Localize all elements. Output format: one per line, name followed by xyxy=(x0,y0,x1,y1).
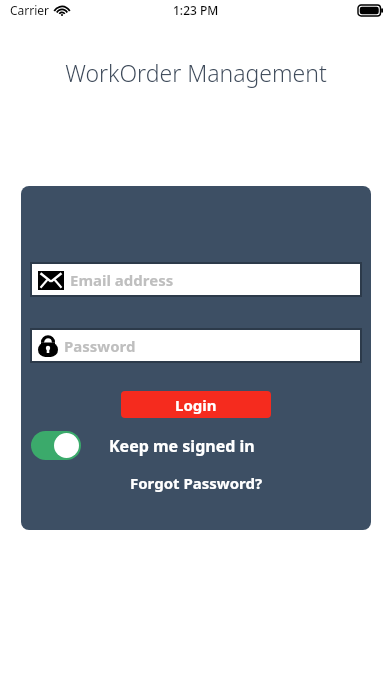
button[interactable]: Forgot Password? xyxy=(124,471,269,495)
staticText: WorkOrder Management xyxy=(65,57,327,88)
staticText: 1:23 PM xyxy=(173,2,219,18)
button[interactable]: Password xyxy=(30,328,362,363)
other: Password xyxy=(38,335,58,357)
staticText: Carrier xyxy=(10,2,50,18)
button[interactable]: Keep me signed in toggle xyxy=(31,431,81,460)
other: Email xyxy=(38,271,64,290)
button[interactable]: Login xyxy=(121,391,271,418)
staticText: Email address xyxy=(70,270,174,290)
staticText: Login xyxy=(175,395,217,415)
staticText: Password xyxy=(64,336,136,356)
button[interactable]: Keep me signed in xyxy=(109,435,255,457)
button[interactable]: Email xyxy=(30,262,362,297)
